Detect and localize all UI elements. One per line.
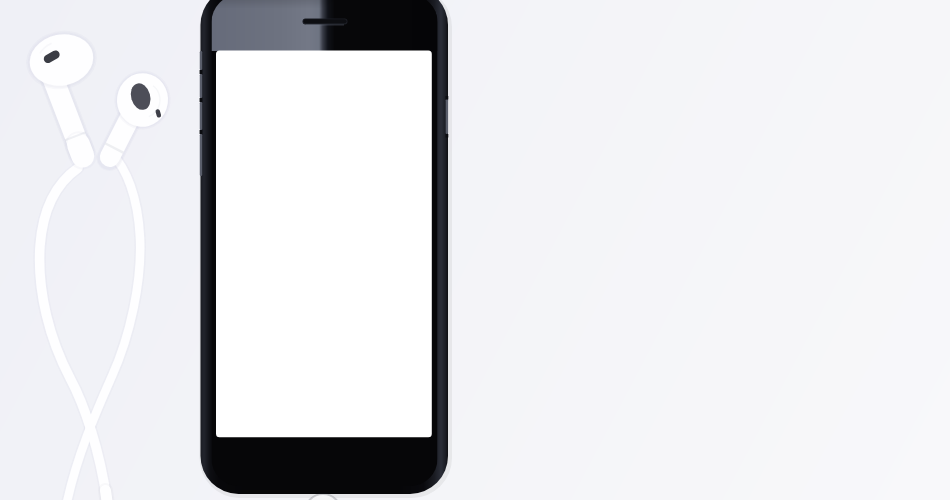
button[interactable]: Smartphone mockup with earphones	[0, 0, 950, 500]
